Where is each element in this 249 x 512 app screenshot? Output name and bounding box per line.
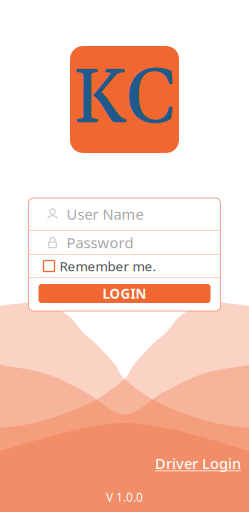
staticText: Driver Login [155, 454, 241, 473]
button[interactable]: Remember me. [28, 255, 220, 277]
staticText: Password [66, 233, 133, 252]
staticText: V 1.0.0 [106, 489, 143, 505]
button[interactable]: Driver Login [153, 454, 243, 473]
staticText: LOGIN [102, 285, 146, 302]
staticText: Remember me. [59, 257, 156, 275]
staticText: KC [72, 50, 176, 149]
button[interactable]: LOGIN [38, 284, 210, 303]
staticText: User Name [66, 204, 143, 224]
